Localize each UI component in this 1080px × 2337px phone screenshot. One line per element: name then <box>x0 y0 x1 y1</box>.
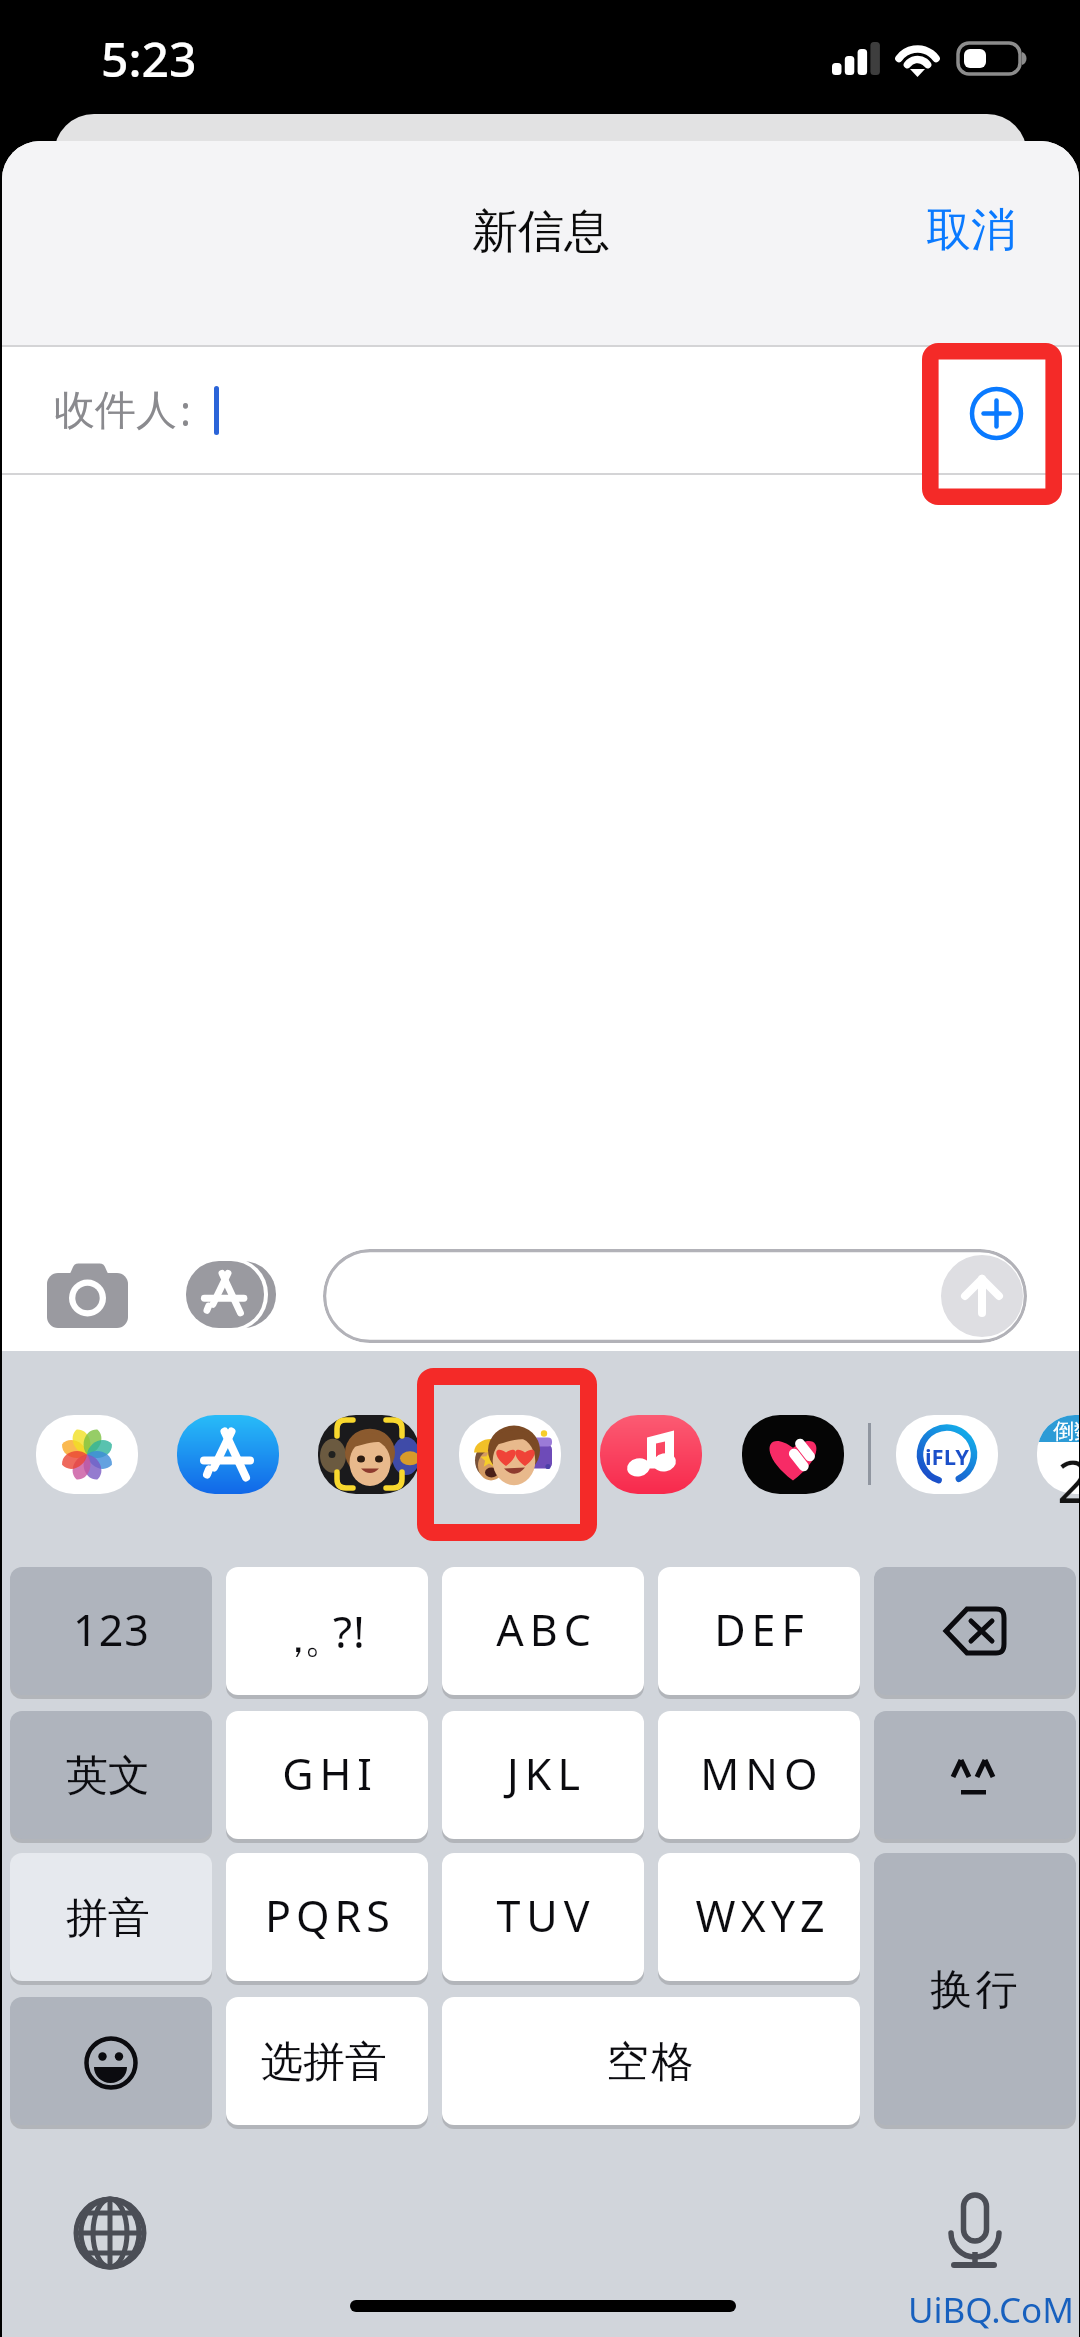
staticText: 收件人 <box>54 385 177 437</box>
staticText: DEF <box>714 1600 810 1659</box>
button[interactable]: Music <box>600 1415 702 1494</box>
staticText: JKL <box>507 1744 586 1803</box>
staticText: ABC <box>496 1600 597 1659</box>
button[interactable]: 取消 <box>920 190 1022 271</box>
button[interactable]: Memoji stickers <box>459 1415 561 1494</box>
button[interactable]: caret <box>874 1711 1076 1839</box>
staticText: 新信息 <box>472 203 610 261</box>
staticText: 倒数 <box>1053 1418 1079 1444</box>
button[interactable]: App Store <box>182 1249 282 1343</box>
button[interactable]: del <box>874 1567 1076 1695</box>
button[interactable]: GHI <box>226 1711 428 1839</box>
staticText: UiBQ.CoM <box>908 2286 1074 2334</box>
button[interactable]: 换行 <box>874 1853 1076 2125</box>
button[interactable]: DEF <box>658 1567 860 1695</box>
button[interactable]: iFLY <box>896 1415 998 1494</box>
staticText: 换行 <box>929 1964 1019 2017</box>
staticText: iFLY <box>925 1441 970 1471</box>
button[interactable]: TUV <box>442 1853 644 1981</box>
button[interactable]: Memoji <box>318 1415 420 1494</box>
button[interactable]: emoji <box>10 1997 212 2125</box>
button[interactable]: ABC <box>442 1567 644 1695</box>
button[interactable]: 空格 <box>442 1997 860 2125</box>
button[interactable]: WXYZ <box>658 1853 860 1981</box>
staticText: WXYZ <box>695 1886 830 1945</box>
staticText: 英文 <box>66 1750 150 1803</box>
staticText: 2 <box>1057 1441 1079 1520</box>
button[interactable]: ，。 <box>226 1567 428 1695</box>
button[interactable]: Camera <box>40 1254 136 1336</box>
button[interactable]: JKL <box>442 1711 644 1839</box>
staticText: 取消 <box>926 202 1016 259</box>
button[interactable]: App Store <box>177 1415 279 1494</box>
staticText: GHI <box>282 1744 378 1803</box>
button[interactable]: 123 <box>10 1567 212 1695</box>
button[interactable]: Health <box>742 1415 844 1494</box>
button[interactable]: Photos <box>36 1415 138 1494</box>
button[interactable]: Calendar <box>1037 1415 1079 1494</box>
button[interactable]: Switch keyboard <box>73 2196 147 2270</box>
staticText: MNO <box>700 1744 824 1803</box>
staticText: TUV <box>496 1886 596 1945</box>
staticText: ?! <box>333 1601 366 1661</box>
button[interactable]: Send <box>941 1255 1023 1337</box>
button[interactable]: 拼音 <box>10 1853 212 1981</box>
staticText: 5:23 <box>101 26 197 91</box>
button[interactable]: MNO <box>658 1711 860 1839</box>
staticText: 空格 <box>605 2036 695 2089</box>
button[interactable]: Dictation <box>938 2196 1012 2270</box>
button[interactable]: Add contact <box>954 367 1042 455</box>
button[interactable]: PQRS <box>226 1853 428 1981</box>
button[interactable]: 英文 <box>10 1711 212 1839</box>
staticText: : <box>180 382 191 438</box>
staticText: 拼音 <box>66 1892 150 1945</box>
button[interactable]: Message input field <box>323 1249 1027 1343</box>
staticText: 选拼音 <box>261 2036 387 2089</box>
button[interactable]: 选拼音 <box>226 1997 428 2125</box>
staticText: 123 <box>73 1600 150 1659</box>
staticText: ，。 <box>285 1613 337 1663</box>
staticText: PQRS <box>265 1886 395 1945</box>
